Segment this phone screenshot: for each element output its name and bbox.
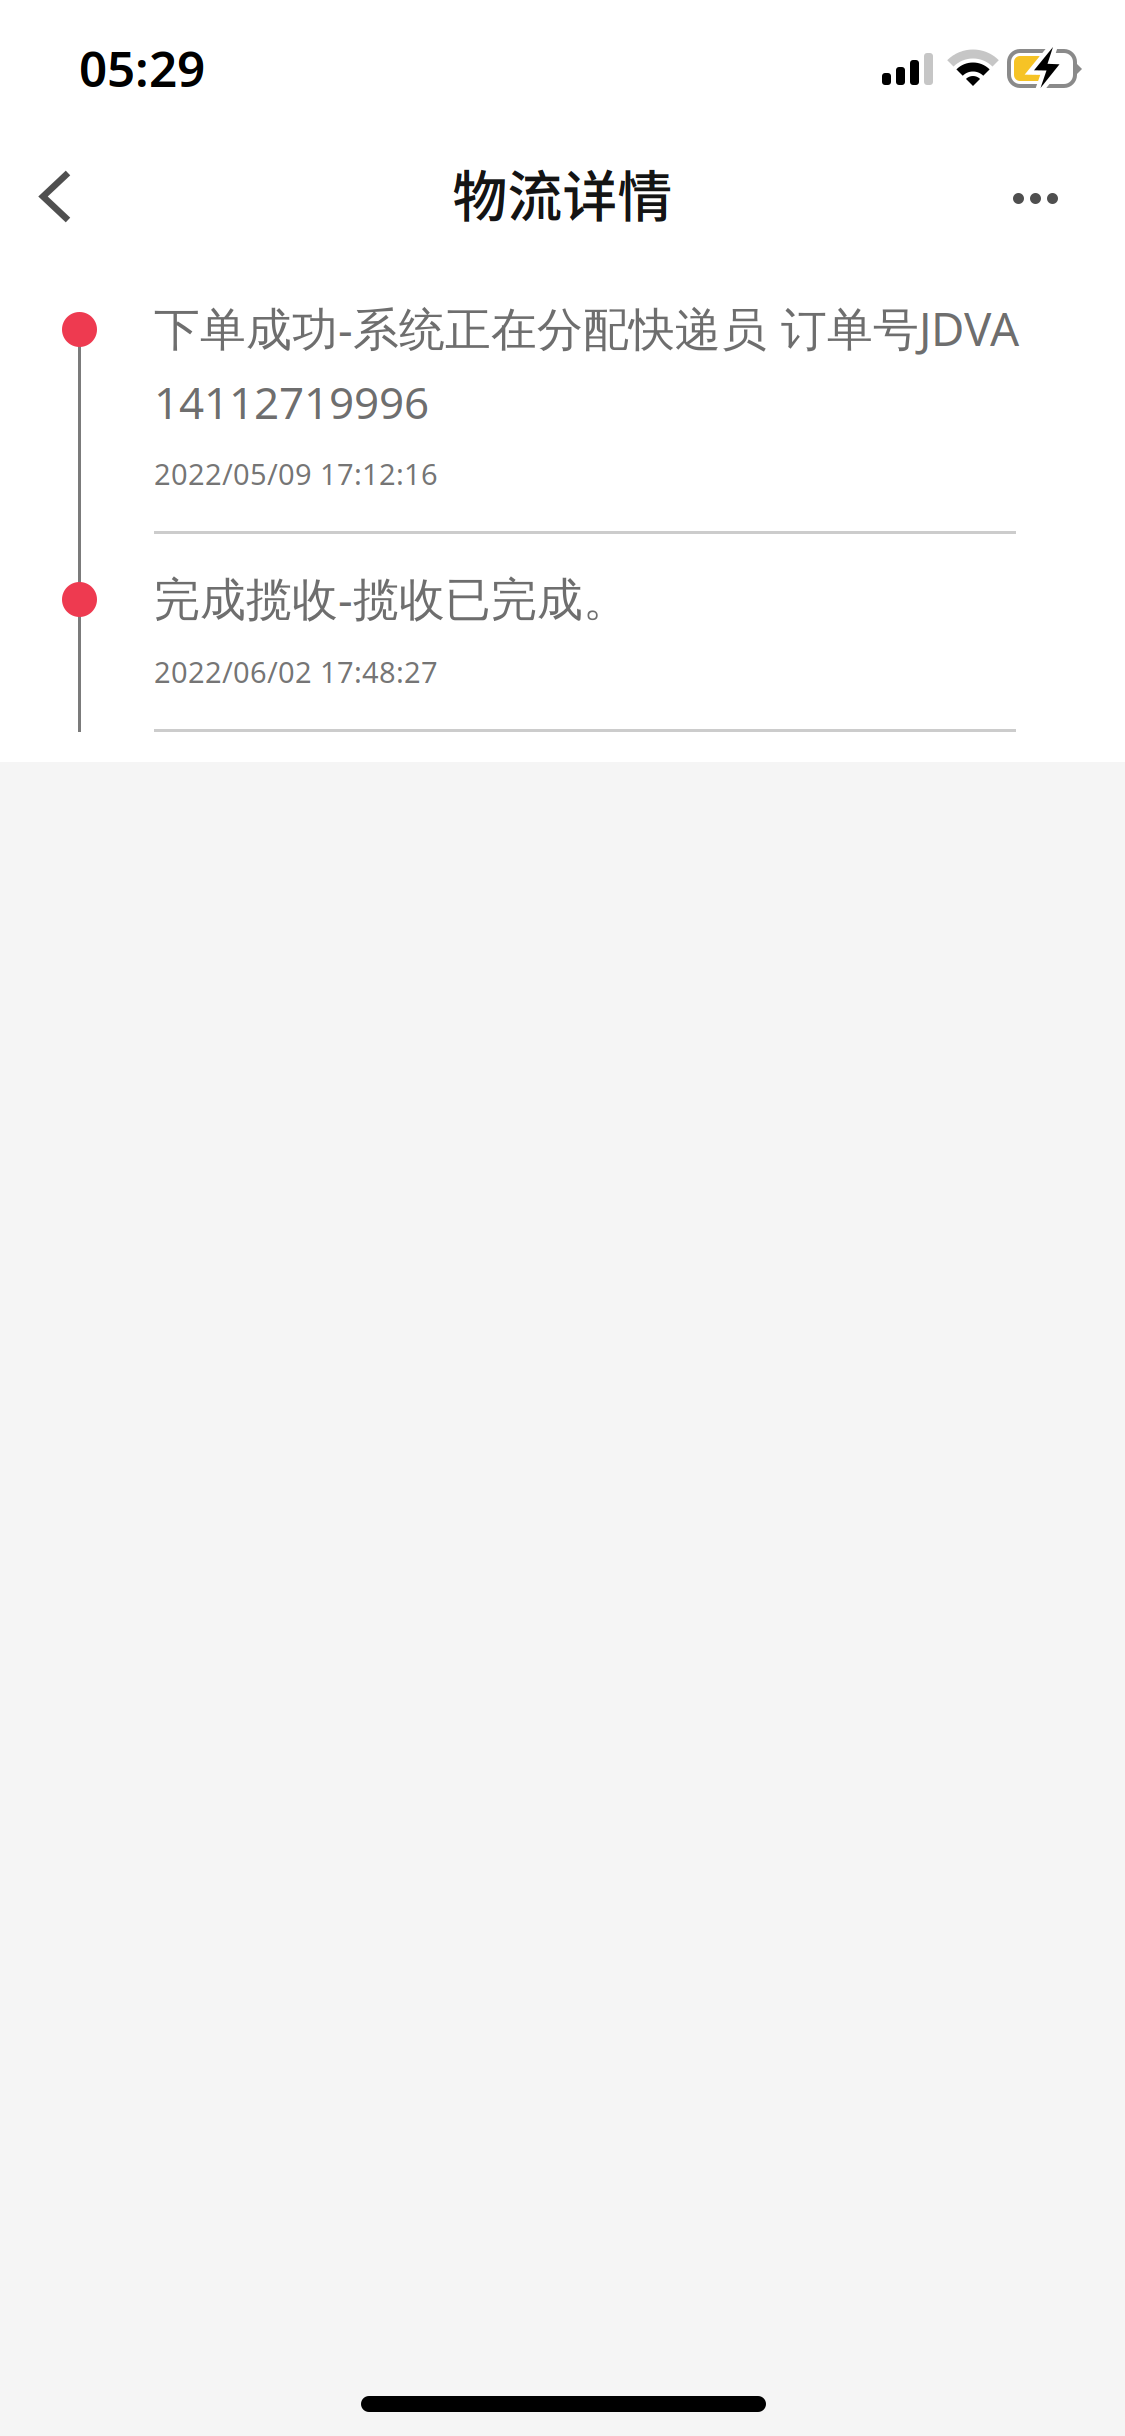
button[interactable]: More options xyxy=(998,132,1094,267)
staticText: 2022/05/09 17:12:16 xyxy=(154,454,438,494)
button[interactable]: 完成揽收-揽收已完成。 xyxy=(154,567,1016,743)
staticText: 05:29 xyxy=(79,35,205,100)
button[interactable]: Back xyxy=(10,132,106,267)
staticText: 下单成功-系统正在分配快递员 订单号JDVA xyxy=(154,297,1019,359)
staticText: 14112719996 xyxy=(154,372,429,432)
staticText: 2022/06/02 17:48:27 xyxy=(154,652,438,692)
button[interactable]: 下单成功-系统正在分配快递员 订单号JDVA xyxy=(154,297,1016,545)
staticText: 物流详情 xyxy=(452,153,672,232)
staticText: 完成揽收-揽收已完成。 xyxy=(154,567,629,629)
